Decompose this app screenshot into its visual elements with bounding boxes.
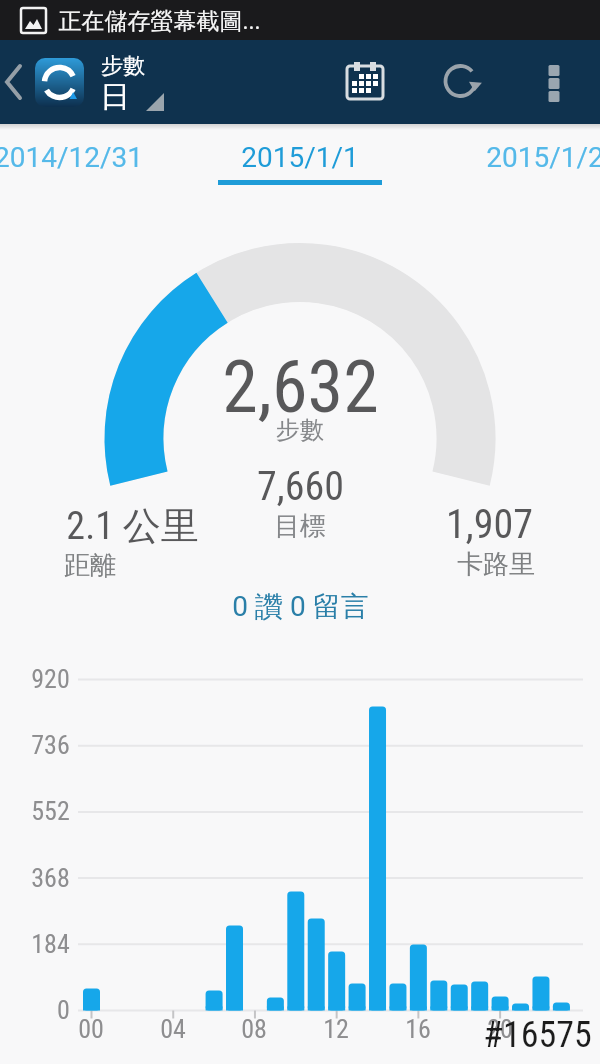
button[interactable] (436, 40, 484, 124)
staticText: 正在儲存螢幕截圖... (58, 7, 261, 36)
staticText: 1,907 (446, 501, 533, 548)
staticText: 04 (160, 1014, 186, 1044)
staticText: 卡路里 (457, 548, 535, 581)
staticText: 12 (323, 1014, 349, 1044)
button[interactable]: 2015/1/2 (480, 140, 600, 174)
button[interactable]: 2015/1/1 (218, 132, 382, 182)
staticText: 2015/1/1 (241, 141, 359, 174)
staticText: 日 (100, 78, 130, 116)
staticText: 00 (78, 1014, 104, 1044)
button[interactable] (35, 58, 84, 107)
staticText: 距離 (64, 549, 116, 582)
staticText: 552 (31, 796, 70, 826)
button[interactable]: 0 讚 0 留言 (0, 0, 220, 56)
staticText: 目標 (274, 510, 326, 543)
button[interactable] (342, 40, 390, 124)
staticText: 368 (31, 863, 70, 893)
staticText: 20 (487, 1014, 513, 1044)
staticText: 2,632 (222, 345, 379, 429)
staticText: 184 (31, 929, 70, 959)
button[interactable]: 2014/12/31 (0, 140, 148, 174)
staticText: 2.1 公里 (66, 502, 199, 550)
staticText: 0 (57, 995, 70, 1025)
staticText: 7,660 (257, 463, 344, 510)
button[interactable]: 步數 (96, 40, 186, 124)
staticText: 2015/1/2 (486, 141, 600, 174)
staticText: 2014/12/31 (0, 141, 143, 174)
button[interactable] (0, 58, 30, 108)
staticText: 920 (31, 664, 70, 694)
staticText: #16575 (483, 1014, 592, 1056)
staticText: 16 (405, 1014, 431, 1044)
staticText: 0 讚 0 留言 (232, 589, 369, 624)
staticText: 08 (241, 1014, 267, 1044)
button[interactable] (530, 40, 578, 124)
staticText: 736 (31, 730, 70, 760)
staticText: 步數 (276, 415, 324, 445)
staticText: 步數 (101, 52, 145, 80)
